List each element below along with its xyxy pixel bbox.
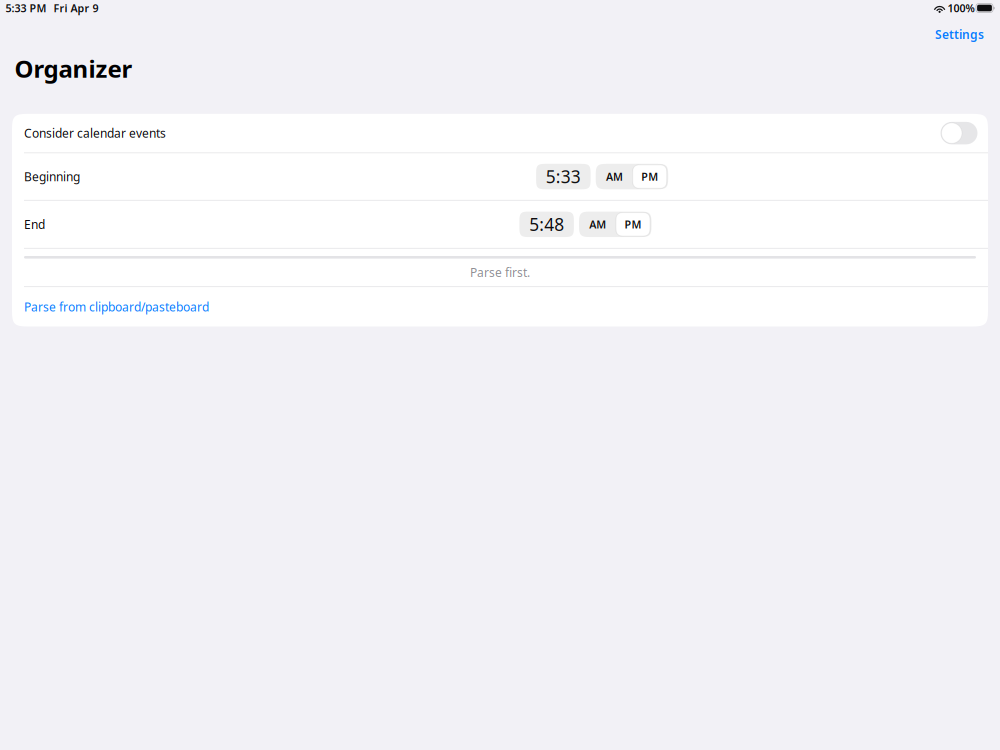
staticText: Settings <box>935 26 984 42</box>
staticText: 5:33 PM <box>5 1 46 15</box>
button[interactable]: 5:48 <box>519 212 574 237</box>
button[interactable]: PM <box>633 165 668 188</box>
staticText: Consider calendar events <box>24 125 166 141</box>
staticText: Organizer <box>14 52 132 84</box>
staticText: Parse from clipboard/pasteboard <box>24 299 209 315</box>
staticText: Parse first. <box>470 264 530 280</box>
button[interactable]: 5:33 <box>536 164 591 189</box>
button[interactable]: Consider calendar events <box>12 114 988 152</box>
button[interactable]: Parse from clipboard/pasteboard <box>12 287 988 326</box>
staticText: Beginning <box>24 169 80 184</box>
staticText: 5:48 <box>529 213 564 236</box>
staticText: End <box>24 216 45 232</box>
staticText: 5:33 <box>546 165 581 188</box>
button[interactable]: AM <box>596 164 633 189</box>
staticText: AM <box>589 217 606 231</box>
button[interactable]: PM <box>616 213 651 236</box>
button[interactable]: Settings <box>927 22 992 46</box>
staticText: 100% <box>947 1 974 15</box>
staticText: AM <box>606 169 623 184</box>
button[interactable]: AM <box>579 212 616 237</box>
staticText: PM <box>624 217 641 231</box>
button[interactable]: Consider calendar events <box>940 122 977 144</box>
staticText: PM <box>641 169 658 184</box>
staticText: Fri Apr 9 <box>53 1 98 15</box>
